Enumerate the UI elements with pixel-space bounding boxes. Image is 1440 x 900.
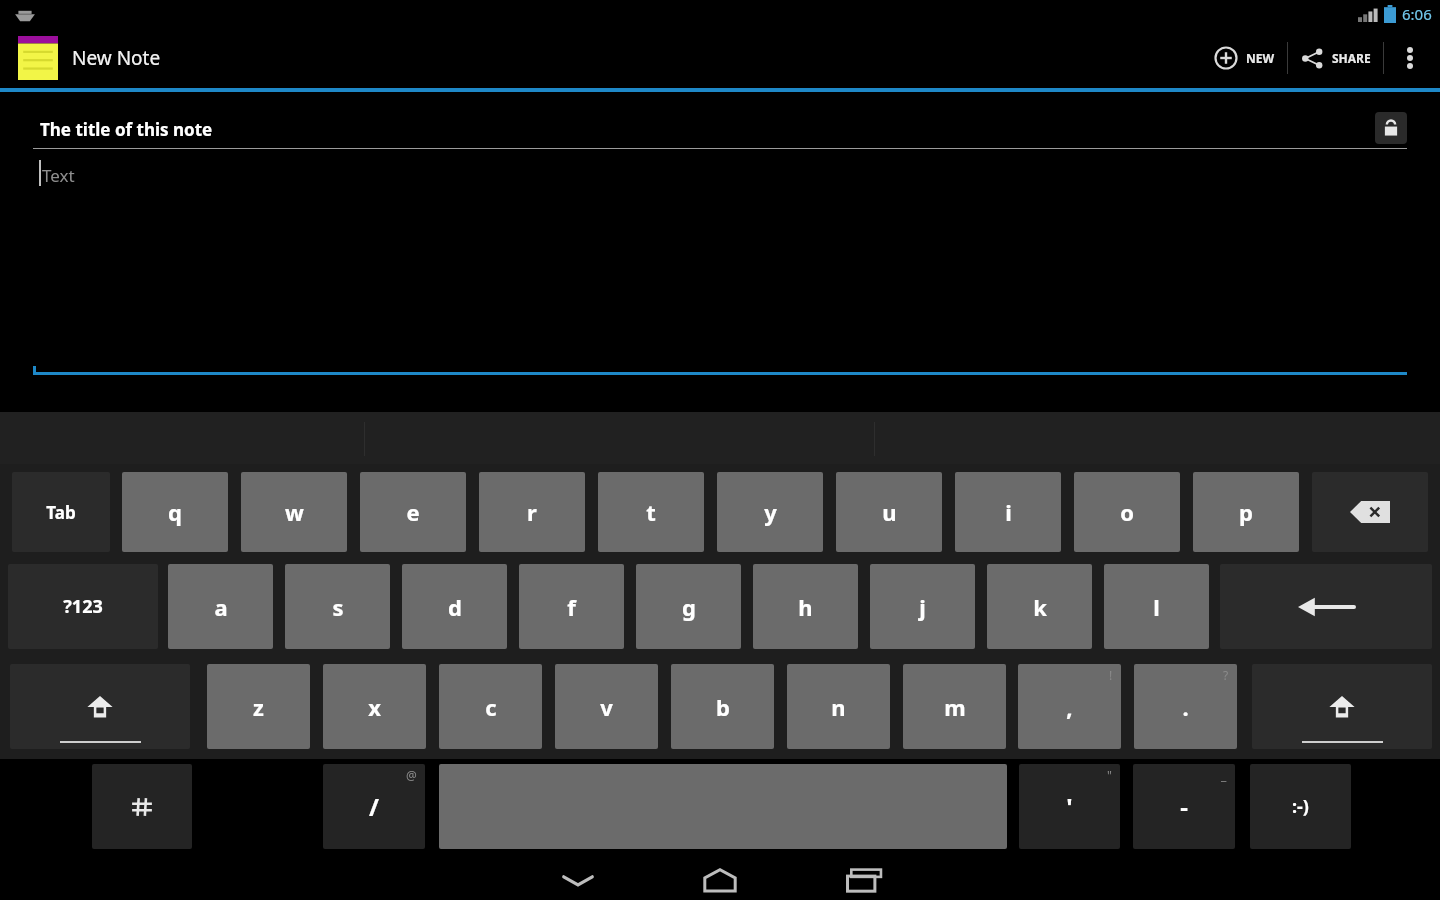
button[interactable]: Tab: [12, 472, 110, 552]
staticText: b: [716, 692, 730, 722]
button[interactable]: l: [1104, 564, 1209, 649]
staticText: m: [944, 692, 966, 722]
staticText: o: [1120, 497, 1134, 527]
staticText: f: [567, 592, 576, 622]
button[interactable]: v: [555, 664, 658, 749]
staticText: v: [600, 692, 613, 722]
staticText: y: [764, 497, 777, 527]
button[interactable]: a: [168, 564, 273, 649]
button[interactable]: h: [753, 564, 858, 649]
button[interactable]: Switch keyboard: [92, 764, 192, 849]
button[interactable]: Lock note: [1375, 112, 1407, 144]
button[interactable]: c: [439, 664, 542, 749]
staticText: a: [214, 592, 228, 622]
button[interactable]: y: [717, 472, 823, 552]
staticText: Tab: [46, 501, 76, 524]
staticText: w: [285, 497, 304, 527]
button[interactable]: z: [207, 664, 310, 749]
button[interactable]: Shift: [1252, 664, 1432, 749]
button[interactable]: ': [1019, 764, 1120, 849]
button[interactable]: ?123: [8, 564, 158, 649]
staticText: 6:06: [1402, 4, 1432, 24]
button[interactable]: s: [285, 564, 390, 649]
staticText: -: [1180, 790, 1188, 823]
staticText: _: [1221, 767, 1227, 783]
staticText: i: [1005, 497, 1012, 527]
button[interactable]: SHARE: [1288, 28, 1383, 88]
staticText: n: [831, 692, 846, 722]
staticText: z: [253, 692, 264, 722]
staticText: r: [527, 497, 537, 527]
staticText: h: [798, 592, 813, 622]
button[interactable]: Shift: [10, 664, 190, 749]
staticText: .: [1182, 692, 1189, 722]
button[interactable]: w: [241, 472, 347, 552]
button[interactable]: p: [1193, 472, 1299, 552]
button[interactable]: x: [323, 664, 426, 749]
staticText: ?: [1223, 667, 1229, 683]
staticText: NEW: [1246, 50, 1275, 66]
staticText: u: [882, 497, 897, 527]
button[interactable]: f: [519, 564, 624, 649]
button[interactable]: o: [1074, 472, 1180, 552]
button[interactable]: Home: [682, 859, 758, 900]
button[interactable]: Backspace: [1312, 472, 1428, 552]
button[interactable]: New Note: [18, 36, 161, 80]
button[interactable]: More options: [1384, 28, 1436, 88]
button[interactable]: u: [836, 472, 942, 552]
button[interactable]: k: [987, 564, 1092, 649]
staticText: p: [1239, 497, 1253, 527]
button[interactable]: Enter: [1220, 564, 1432, 649]
button[interactable]: e: [360, 472, 466, 552]
staticText: e: [406, 497, 420, 527]
staticText: Text: [42, 164, 75, 187]
staticText: g: [682, 592, 696, 622]
button[interactable]: r: [479, 472, 585, 552]
button[interactable]: d: [402, 564, 507, 649]
button[interactable]: Hide keyboard: [540, 859, 616, 900]
staticText: c: [485, 692, 497, 722]
staticText: ,: [1066, 692, 1073, 722]
button[interactable]: j: [870, 564, 975, 649]
button[interactable]: :-): [1250, 764, 1351, 849]
button[interactable]: Recent apps: [827, 859, 903, 900]
staticText: ?123: [63, 594, 103, 619]
staticText: The title of this note: [40, 118, 213, 141]
button[interactable]: q: [122, 472, 228, 552]
staticText: j: [919, 592, 926, 622]
staticText: SHARE: [1332, 50, 1371, 66]
staticText: :-): [1292, 794, 1309, 819]
staticText: x: [368, 692, 381, 722]
button[interactable]: /: [323, 764, 425, 849]
button[interactable]: -: [1133, 764, 1235, 849]
button[interactable]: NEW: [1202, 28, 1287, 88]
staticText: !: [1109, 667, 1113, 683]
staticText: /: [369, 790, 379, 823]
staticText: New Note: [72, 45, 161, 71]
button[interactable]: n: [787, 664, 890, 749]
staticText: l: [1153, 592, 1160, 622]
button[interactable]: i: [955, 472, 1061, 552]
staticText: @: [406, 767, 417, 783]
button[interactable]: g: [636, 564, 741, 649]
staticText: ': [1066, 790, 1073, 823]
button[interactable]: m: [903, 664, 1006, 749]
button[interactable]: t: [598, 472, 704, 552]
staticText: ": [1107, 767, 1112, 783]
staticText: d: [448, 592, 462, 622]
button[interactable]: b: [671, 664, 774, 749]
button[interactable]: ,: [1018, 664, 1121, 749]
staticText: k: [1033, 592, 1047, 622]
staticText: t: [646, 497, 656, 527]
staticText: q: [168, 497, 182, 527]
button[interactable]: .: [1134, 664, 1237, 749]
staticText: s: [332, 592, 344, 622]
